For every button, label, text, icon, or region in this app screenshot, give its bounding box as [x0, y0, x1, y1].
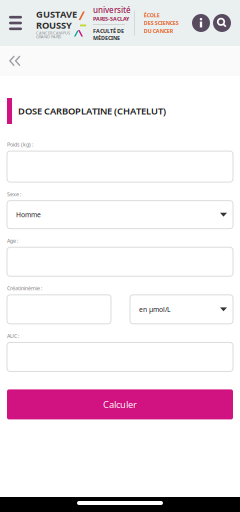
staticText: PARIS-SACLAY [93, 15, 129, 22]
button[interactable]: Calculer [7, 389, 233, 419]
button[interactable]: Retour [0, 46, 30, 76]
staticText: GRAND PARIS [36, 34, 61, 39]
button[interactable]: en µmol/L [130, 295, 233, 324]
staticText: Sexe : [7, 191, 21, 198]
staticText: Homme [16, 210, 41, 219]
staticText: Poids (kg) : [7, 141, 33, 148]
staticText: Calculer [103, 398, 137, 411]
staticText: DOSE CARBOPLATINE (CHATELUT) [18, 105, 166, 117]
staticText: AUC : [7, 332, 19, 339]
staticText: GUSTAVE [36, 8, 77, 20]
staticText: ROUSSY [36, 19, 72, 31]
button[interactable]: Information [192, 14, 210, 32]
staticText: CANCER CAMPUS [36, 30, 70, 36]
staticText: MÉDECINE [93, 34, 120, 41]
staticText: en µmol/L [139, 305, 170, 314]
staticText: ÉCOLE [144, 12, 160, 19]
button[interactable]: Homme [7, 201, 233, 229]
staticText: université [93, 4, 131, 15]
staticText: DU CANCER [144, 27, 173, 34]
button[interactable]: Menu [0, 5, 36, 41]
button[interactable]: Rechercher [213, 14, 231, 32]
staticText: FACULTÉ DE [93, 27, 124, 34]
staticText: Créatininémie : [7, 285, 42, 292]
staticText: Age : [7, 237, 18, 244]
staticText: DES SCIENCES [144, 19, 179, 27]
